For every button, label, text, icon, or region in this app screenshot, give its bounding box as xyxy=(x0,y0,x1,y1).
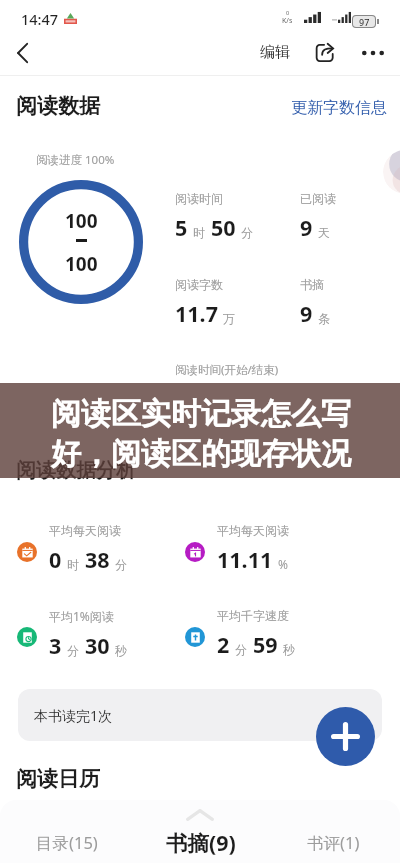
staticText: 秒 xyxy=(115,643,127,658)
staticText: 阅读时间(开始/结束) xyxy=(175,362,279,378)
staticText: % xyxy=(278,556,288,572)
staticText: 目录(15) xyxy=(36,831,98,854)
button[interactable]: 更新字数信息 xyxy=(286,93,392,123)
staticText: 本书读完1次 xyxy=(34,706,113,725)
staticText: 阅读时间 xyxy=(175,191,223,206)
staticText: 时 xyxy=(67,557,79,572)
staticText: 分 xyxy=(115,557,127,572)
button[interactable]: 分享 xyxy=(310,38,339,67)
staticText: 书摘 xyxy=(300,277,324,292)
staticText: 万 xyxy=(223,311,235,326)
staticText: 3 xyxy=(49,631,62,660)
button[interactable]: 展开 xyxy=(172,804,228,826)
staticText: 14:47 xyxy=(21,9,59,29)
staticText: 分 xyxy=(241,225,253,240)
staticText: 更新字数信息 xyxy=(291,98,387,118)
staticText: 9 xyxy=(300,213,313,242)
staticText: 59 xyxy=(253,630,278,659)
staticText: 100 xyxy=(65,208,98,234)
staticText: 秒 xyxy=(283,642,295,657)
staticText: 分 xyxy=(67,643,79,658)
staticText: 5 xyxy=(175,213,188,242)
button[interactable]: 添加书摘 xyxy=(316,707,375,766)
button[interactable]: 本书读完1次 xyxy=(18,689,382,741)
staticText: K/s xyxy=(282,16,293,26)
button[interactable]: 编辑 xyxy=(254,36,296,69)
staticText: 天 xyxy=(318,225,330,240)
button[interactable]: 返回 xyxy=(4,34,41,71)
staticText: 书摘(9) xyxy=(166,828,236,857)
staticText: 阅读字数 xyxy=(175,277,223,292)
staticText: 已阅读 xyxy=(300,191,336,206)
staticText: 平均1%阅读 xyxy=(49,608,114,624)
button[interactable]: 目录(15) xyxy=(0,821,134,863)
staticText: 阅读数据 xyxy=(16,93,100,119)
staticText: 阅读进度 100% xyxy=(36,152,115,168)
button[interactable]: 更多 xyxy=(358,38,387,67)
staticText: 好，阅读区的现存状况 xyxy=(51,435,351,473)
staticText: 38 xyxy=(85,545,110,574)
staticText: 50 xyxy=(211,213,236,242)
staticText: 11.7 xyxy=(175,299,218,328)
staticText: 阅读数据分析 xyxy=(16,458,136,483)
staticText: 97 xyxy=(359,16,370,27)
staticText: 9 xyxy=(300,299,313,328)
staticText: 分 xyxy=(235,642,247,657)
staticText: 阅读日历 xyxy=(16,766,100,792)
button[interactable]: 书摘(9) xyxy=(134,821,267,863)
staticText: 条 xyxy=(318,311,330,326)
staticText: 100 xyxy=(65,251,98,277)
staticText: 0 xyxy=(49,545,62,574)
staticText: 编辑 xyxy=(260,43,290,62)
staticText: 11.11 xyxy=(217,545,273,574)
staticText: 平均千字速度 xyxy=(217,608,289,623)
staticText: 30 xyxy=(85,631,110,660)
staticText: 0 xyxy=(286,9,290,16)
staticText: 平均每天阅读 xyxy=(49,523,121,538)
staticText: 时 xyxy=(193,225,205,240)
staticText: 平均每天阅读 xyxy=(217,523,289,538)
staticText: 阅读区实时记录怎么写 xyxy=(51,395,351,433)
button[interactable]: 书评(1) xyxy=(267,821,400,863)
staticText: 书评(1) xyxy=(307,831,360,854)
staticText: 2 xyxy=(217,630,230,659)
